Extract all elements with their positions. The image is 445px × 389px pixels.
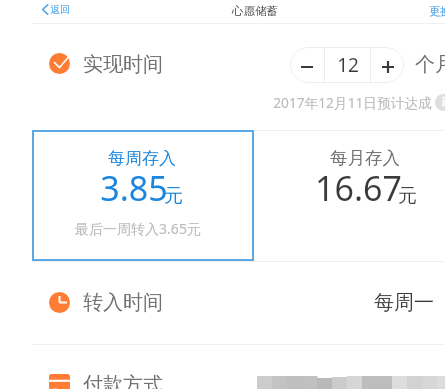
staticText: 元 [398,184,417,208]
staticText: 实现时间 [83,52,163,77]
button[interactable]: 每周存入 [32,130,254,261]
button[interactable]: 更换 [429,4,445,18]
staticText: 转入时间 [83,290,163,315]
staticText: 个月 [415,52,445,77]
staticText: 元 [164,184,183,208]
staticText: 16.67 [315,165,402,211]
staticText: 每周存入 [108,148,176,169]
staticText: 3.85 [100,165,168,211]
staticText: 最后一周转入3.65元 [75,219,201,238]
button[interactable] [0,262,445,344]
staticText: 心愿储蓄 [232,4,278,18]
staticText: 2017年12月11日预计达成 [273,93,432,112]
staticText: 12 [337,52,359,78]
staticText: 每月存入 [330,147,400,169]
button[interactable]: Decrease months [290,47,324,83]
button[interactable]: 每月存入 [254,130,445,261]
staticText: 每周一 [374,290,434,315]
staticText: 返回 [50,4,70,16]
button[interactable]: Information [435,94,445,111]
button[interactable]: Increase months [371,47,404,83]
button[interactable]: 返回 [42,3,70,15]
button[interactable] [0,345,445,389]
staticText: 付款方式 [83,372,163,389]
